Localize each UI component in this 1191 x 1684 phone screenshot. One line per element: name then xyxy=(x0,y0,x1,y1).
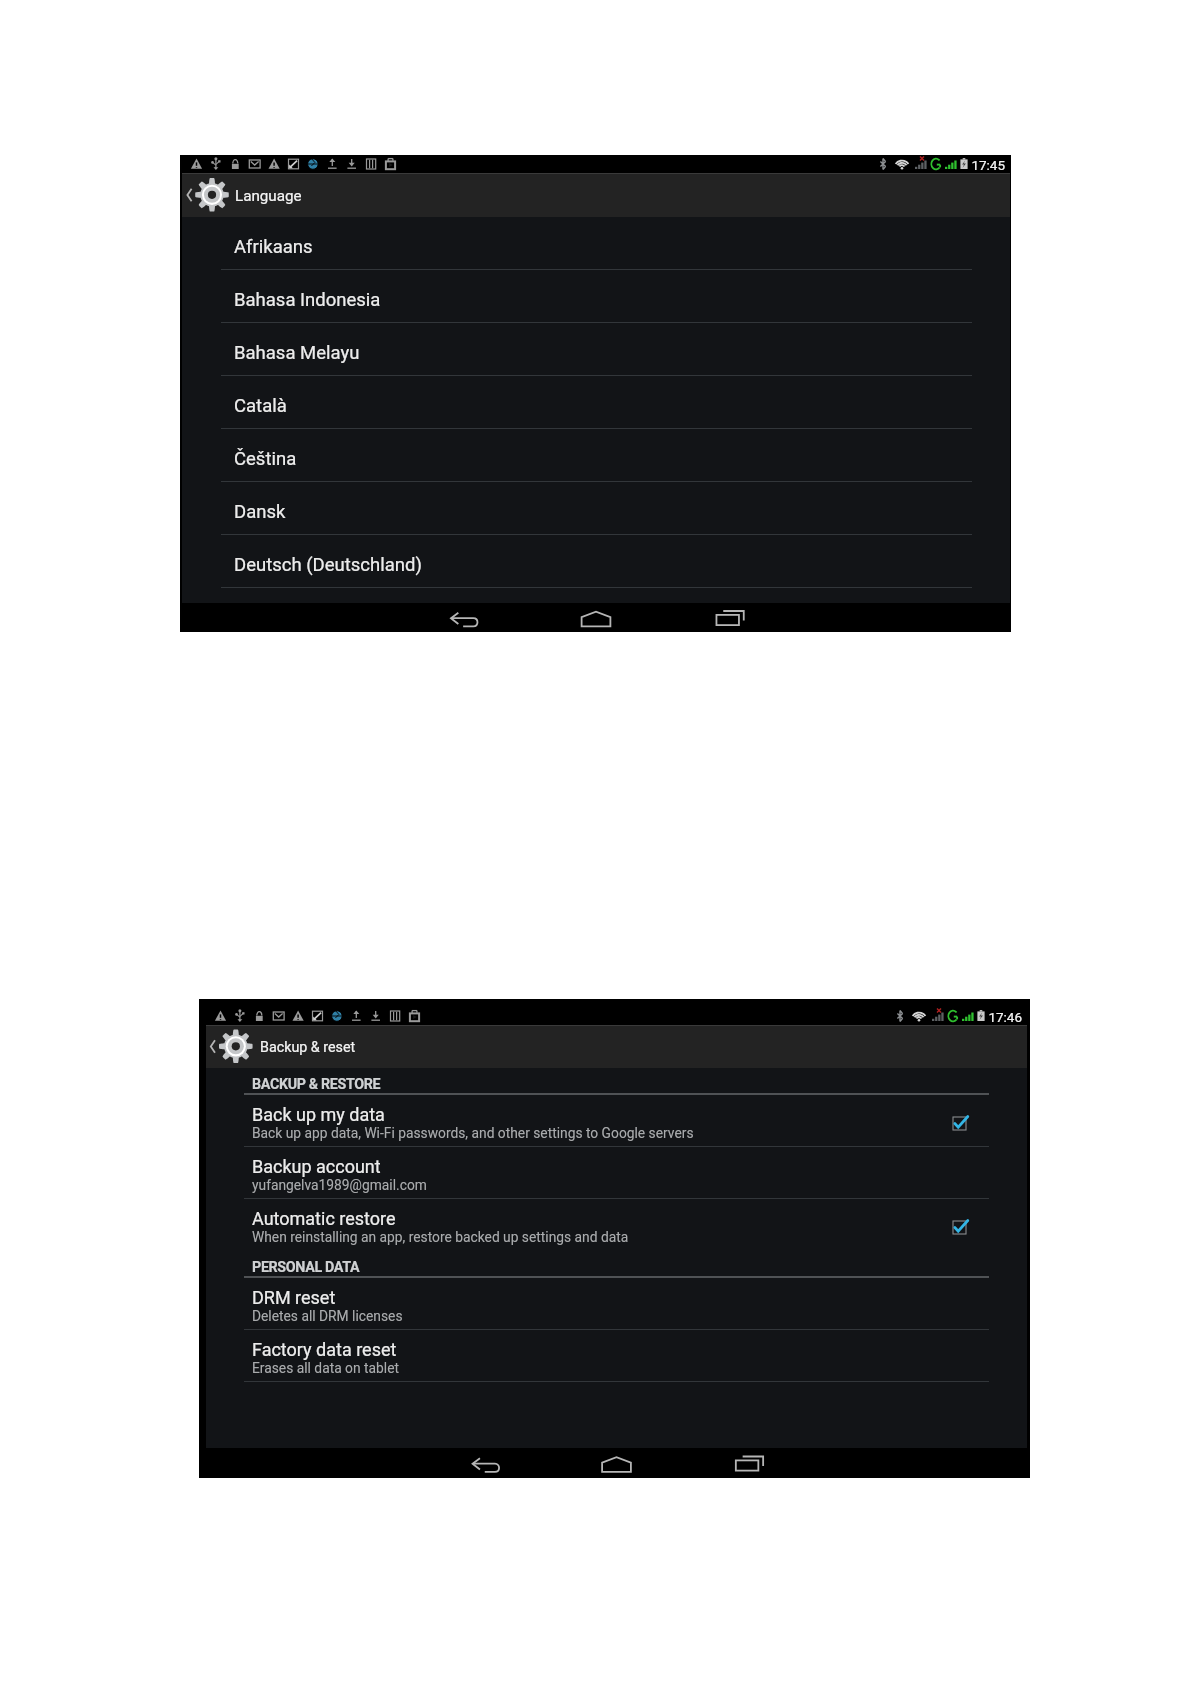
button[interactable]: Toggle Back up my data xyxy=(953,1117,966,1130)
staticText: Čeština xyxy=(234,448,297,470)
staticText: Back up app data, Wi-Fi passwords, and o… xyxy=(252,1125,694,1141)
button[interactable]: Deutsch (Deutschland) xyxy=(182,535,1010,588)
button[interactable]: Back xyxy=(180,603,457,632)
button[interactable]: Recent apps xyxy=(734,603,1011,632)
staticText: DRM reset xyxy=(252,1287,336,1308)
staticText: Language xyxy=(235,187,302,205)
button[interactable]: Bahasa Melayu xyxy=(182,323,1010,376)
staticText: Deletes all DRM licenses xyxy=(252,1308,403,1324)
staticText: PERSONAL DATA xyxy=(252,1259,360,1276)
button[interactable]: Recent apps xyxy=(753,1448,1030,1478)
button[interactable]: Afrikaans xyxy=(182,217,1010,270)
staticText: Bahasa Indonesia xyxy=(234,289,381,311)
button[interactable]: DRM reset xyxy=(206,1278,1027,1330)
staticText: Erases all data on tablet xyxy=(252,1360,399,1376)
button[interactable]: Factory data reset xyxy=(206,1330,1027,1382)
button[interactable]: Home xyxy=(457,603,734,632)
button[interactable]: Čeština xyxy=(182,429,1010,482)
staticText: When reinstalling an app, restore backed… xyxy=(252,1229,629,1245)
button[interactable]: Dansk xyxy=(182,482,1010,535)
button[interactable]: Navigate up xyxy=(182,173,235,217)
staticText: Automatic restore xyxy=(252,1208,396,1229)
staticText: Afrikaans xyxy=(234,236,313,258)
staticText: Back up my data xyxy=(252,1104,385,1125)
staticText: 17:46 xyxy=(199,1009,1022,1025)
button[interactable]: Automatic restore xyxy=(206,1199,1027,1251)
button[interactable]: Català xyxy=(182,376,1010,429)
staticText: yufangelva1989@gmail.com xyxy=(252,1177,427,1193)
button[interactable]: Toggle Automatic restore xyxy=(953,1221,966,1234)
button[interactable]: Back up my data xyxy=(206,1095,1027,1147)
staticText: BACKUP & RESTORE xyxy=(252,1076,381,1093)
staticText: Backup & reset xyxy=(260,1039,356,1056)
staticText: Deutsch (Deutschland) xyxy=(234,554,422,576)
staticText: Dansk xyxy=(234,501,286,523)
button[interactable]: Navigate up xyxy=(206,1025,260,1068)
button[interactable]: Back xyxy=(199,1448,476,1478)
staticText: Català xyxy=(234,395,287,417)
staticText: Bahasa Melayu xyxy=(234,342,360,364)
staticText: Backup account xyxy=(252,1156,381,1177)
button[interactable]: Bahasa Indonesia xyxy=(182,270,1010,323)
staticText: 17:45 xyxy=(180,157,1005,173)
button[interactable]: Home xyxy=(476,1448,753,1478)
staticText: Factory data reset xyxy=(252,1339,397,1360)
button[interactable]: Backup account xyxy=(206,1147,1027,1199)
